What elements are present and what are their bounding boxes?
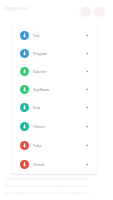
staticText: Fitness bbox=[33, 124, 45, 129]
button[interactable]: Test bbox=[12, 26, 97, 44]
button[interactable]: Zayiflama bbox=[12, 80, 97, 98]
staticText: Zayiflama bbox=[33, 87, 49, 92]
button[interactable]: Takip bbox=[12, 136, 97, 155]
button[interactable]: More options bbox=[92, 4, 106, 18]
staticText: Test bbox=[33, 33, 40, 38]
staticText: Program bbox=[33, 51, 48, 56]
button[interactable]: Destek bbox=[12, 155, 97, 174]
staticText: Lorem ipsum dolor sit amet consectetur a… bbox=[4, 176, 88, 181]
staticText: elit sed do eiusmod tempor incididunt ut… bbox=[4, 183, 87, 188]
staticText: Takip bbox=[33, 143, 42, 148]
staticText: Kaloriler bbox=[33, 69, 47, 74]
staticText: Destek bbox=[33, 162, 45, 167]
button[interactable]: Kaloriler bbox=[12, 62, 97, 80]
staticText: Uygulama bbox=[4, 5, 29, 12]
button[interactable]: Fitness bbox=[12, 117, 97, 136]
staticText: Ecza bbox=[33, 105, 41, 110]
button[interactable]: Program bbox=[12, 44, 97, 62]
staticText: dolore magna aliqua ut enim ad minim ven… bbox=[4, 190, 89, 195]
button[interactable]: Ecza bbox=[12, 98, 97, 117]
button[interactable]: Search bbox=[78, 4, 92, 18]
